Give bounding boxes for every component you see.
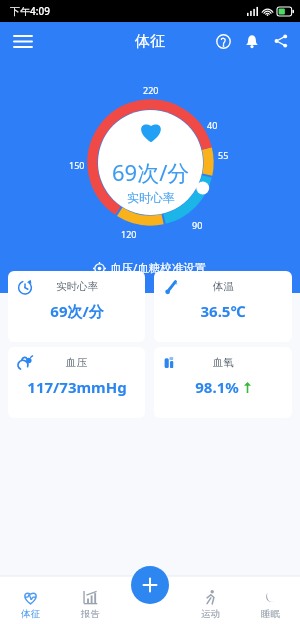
staticText: 报告 xyxy=(81,608,100,620)
staticText: 实时心率 xyxy=(56,280,98,293)
staticText: 血氧 xyxy=(213,356,234,369)
button[interactable]: 血压/血糖校准设置 xyxy=(0,255,300,281)
staticText: 睡眠 xyxy=(261,608,280,620)
staticText: 运动 xyxy=(201,608,220,620)
staticText: 血压 xyxy=(66,356,87,369)
staticText: 55 xyxy=(218,149,229,161)
button[interactable]: 血压 xyxy=(8,347,145,418)
staticText: 98.1% xyxy=(195,377,239,397)
staticText: 40 xyxy=(207,119,218,131)
staticText: 血压/血糖校准设置 xyxy=(110,260,207,276)
button[interactable]: Menu xyxy=(6,24,40,58)
button[interactable]: Notifications xyxy=(239,28,265,54)
button[interactable]: 报告 xyxy=(60,576,120,624)
button[interactable]: 血氧 xyxy=(154,347,292,418)
button[interactable]: 实时心率 xyxy=(8,271,145,342)
staticText: 117/73mmHg xyxy=(27,377,127,397)
staticText: 实时心率 xyxy=(127,190,175,205)
staticText: 体征 xyxy=(21,608,40,620)
staticText: 36.5℃ xyxy=(200,301,246,321)
button[interactable]: 睡眠 xyxy=(240,576,300,624)
button[interactable]: 体征 xyxy=(0,576,60,624)
button[interactable]: 运动 xyxy=(180,576,240,624)
staticText: 120 xyxy=(121,228,137,240)
staticText: 69次/分 xyxy=(50,301,104,321)
staticText: 体征 xyxy=(135,32,165,51)
button[interactable]: Share xyxy=(268,28,294,54)
staticText: 150 xyxy=(69,159,85,171)
button[interactable]: Add xyxy=(131,566,169,604)
staticText: 69次/分 xyxy=(112,157,190,187)
staticText: 90 xyxy=(192,219,203,231)
staticText: 220 xyxy=(143,84,159,96)
staticText: 下午4:09 xyxy=(10,4,50,18)
button[interactable]: Help xyxy=(210,28,236,54)
button[interactable]: 体温 xyxy=(154,271,292,342)
staticText: 体温 xyxy=(213,280,234,293)
